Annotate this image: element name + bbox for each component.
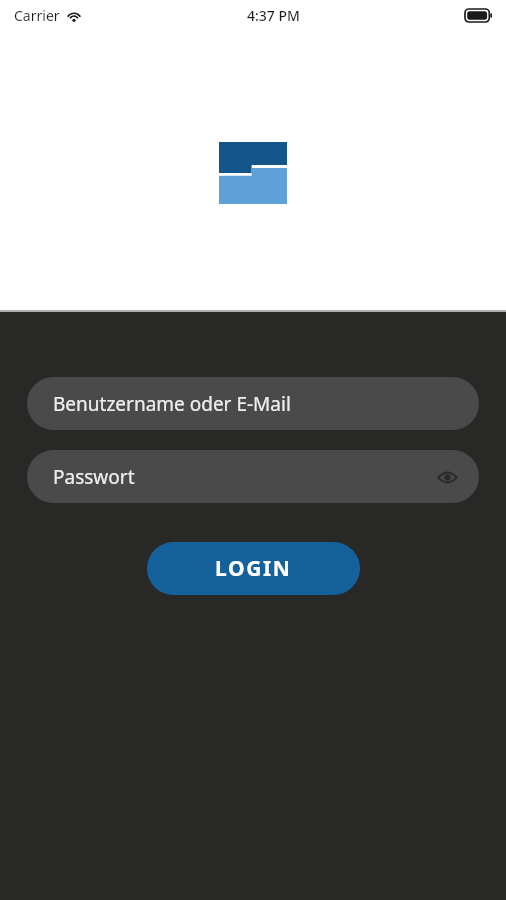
staticText: 4:37 PM [247, 6, 300, 25]
staticText: Carrier [14, 6, 60, 25]
button[interactable]: Benutzername oder E-Mail [27, 377, 479, 430]
staticText: Passwort [53, 464, 433, 490]
staticText: Benutzername oder E-Mail [53, 391, 461, 417]
button[interactable]: Passwort anzeigen [433, 463, 461, 491]
button[interactable]: LOGIN [147, 542, 360, 595]
staticText: LOGIN [215, 554, 292, 583]
button[interactable]: Passwort [27, 450, 479, 503]
